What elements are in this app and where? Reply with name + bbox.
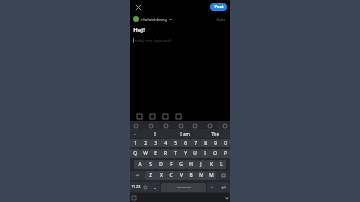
staticText: E <box>154 150 157 157</box>
button[interactable]: E <box>150 149 160 158</box>
staticText: R <box>164 150 167 157</box>
staticText: S <box>149 161 152 168</box>
button[interactable]: 9 <box>210 139 220 147</box>
button[interactable]: Q <box>130 149 140 158</box>
button[interactable]: P <box>220 149 230 158</box>
button[interactable]: 6 <box>180 139 190 147</box>
button[interactable]: Poll <box>174 112 182 120</box>
staticText: Post <box>214 4 224 10</box>
button[interactable]: X <box>156 171 166 180</box>
staticText: Z <box>149 172 152 179</box>
button[interactable]: I <box>200 149 210 158</box>
button[interactable]: Backspace <box>216 171 230 180</box>
button[interactable]: Image <box>148 112 156 120</box>
button[interactable]: More <box>221 122 228 129</box>
button[interactable]: F <box>166 160 176 169</box>
staticText: Rules <box>216 17 226 22</box>
button[interactable]: Rules <box>215 16 227 23</box>
button[interactable]: V <box>176 171 186 180</box>
button[interactable]: D <box>156 160 166 169</box>
button[interactable]: Y <box>180 149 190 158</box>
staticText: P <box>224 150 227 157</box>
staticText: N <box>199 172 203 179</box>
staticText: O <box>213 150 217 157</box>
button[interactable]: The <box>200 129 230 138</box>
button[interactable]: R <box>160 149 170 158</box>
button[interactable]: Emoji <box>132 122 139 129</box>
button[interactable]: H <box>186 160 196 169</box>
button[interactable]: J <box>196 160 206 169</box>
button[interactable]: K <box>206 160 216 169</box>
button[interactable]: 1 <box>130 139 140 147</box>
button[interactable]: 2 <box>140 139 150 147</box>
button[interactable]: Translate <box>177 122 184 129</box>
button[interactable]: B <box>186 171 196 180</box>
button[interactable]: ?123 <box>130 182 141 192</box>
button[interactable]: Settings <box>206 122 213 129</box>
button[interactable]: Close <box>133 2 144 13</box>
staticText: G <box>179 161 183 168</box>
button[interactable]: Post <box>210 3 227 11</box>
button[interactable]: Keyboard <box>130 194 137 201</box>
button[interactable]: 8 <box>200 139 210 147</box>
button[interactable]: Shift <box>130 171 145 180</box>
button[interactable]: Video <box>161 112 169 120</box>
button[interactable]: Back <box>223 194 230 201</box>
staticText: 5 <box>174 140 177 147</box>
staticText: r/wheeldiving <box>141 17 167 22</box>
staticText: ?123 <box>131 184 141 190</box>
button[interactable]: A <box>134 160 145 169</box>
staticText: 9 <box>214 140 217 147</box>
button[interactable]: I <box>140 129 170 138</box>
button[interactable]: Emoji <box>141 182 150 192</box>
button[interactable]: O <box>210 149 220 158</box>
button[interactable]: Search <box>130 129 140 138</box>
button[interactable]: 7 <box>190 139 200 147</box>
staticText: body text (optional) <box>135 38 172 43</box>
staticText: V <box>180 172 183 179</box>
button[interactable]: Z <box>145 171 156 180</box>
staticText: A <box>138 161 142 168</box>
button[interactable]: 4 <box>160 139 170 147</box>
button[interactable]: W <box>140 149 150 158</box>
staticText: I am <box>180 131 190 137</box>
staticText: . <box>211 184 213 190</box>
button[interactable]: . <box>207 182 217 192</box>
button[interactable]: 3 <box>150 139 160 147</box>
staticText: C <box>169 172 173 179</box>
staticText: 2 <box>144 140 147 147</box>
staticText: I <box>154 131 156 137</box>
staticText: Hej! <box>133 26 145 34</box>
button[interactable]: T <box>170 149 180 158</box>
staticText: H <box>189 161 193 168</box>
button[interactable]: 0 <box>220 139 230 147</box>
staticText: X <box>160 172 163 179</box>
staticText: Y <box>184 150 187 157</box>
staticText: W <box>143 150 148 157</box>
button[interactable]: Enter <box>217 182 230 192</box>
staticText: 4 <box>164 140 167 147</box>
button[interactable]: I am <box>170 129 200 138</box>
button[interactable]: M <box>206 171 216 180</box>
button[interactable]: C <box>166 171 176 180</box>
staticText: M <box>209 172 214 179</box>
staticText: , <box>154 184 156 190</box>
button[interactable]: GIF <box>147 122 154 129</box>
button[interactable]: Clipboard <box>162 122 169 129</box>
button[interactable]: 5 <box>170 139 180 147</box>
staticText: B <box>189 172 193 179</box>
button[interactable]: S <box>145 160 156 169</box>
button[interactable]: N <box>196 171 206 180</box>
staticText: L <box>220 161 223 168</box>
button[interactable]: U <box>190 149 200 158</box>
staticText: 7 <box>194 140 197 147</box>
staticText: ⌄ <box>133 131 137 136</box>
staticText: 1 <box>134 140 137 147</box>
button[interactable]: Space <box>161 183 206 192</box>
button[interactable]: , <box>150 182 160 192</box>
button[interactable]: Voice <box>191 122 198 129</box>
button[interactable]: Link <box>135 112 143 120</box>
button[interactable]: L <box>216 160 226 169</box>
staticText: Q <box>133 150 137 157</box>
button[interactable]: G <box>176 160 186 169</box>
